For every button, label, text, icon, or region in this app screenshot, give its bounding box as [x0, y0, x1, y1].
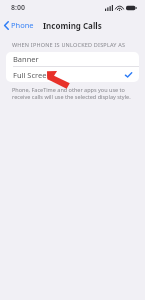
- button[interactable]: Phone: [0, 17, 40, 33]
- other: Selected: [125, 72, 132, 78]
- staticText: Banner: [13, 54, 39, 64]
- staticText: WHEN IPHONE IS UNLOCKED DISPLAY AS: [12, 41, 126, 48]
- button[interactable]: Banner: [6, 52, 139, 66]
- staticText: Phone: [11, 20, 34, 30]
- staticText: Incoming Calls: [43, 20, 102, 31]
- staticText: 8:00: [11, 3, 25, 13]
- staticText: Phone, FaceTime and other apps you use t…: [12, 86, 131, 100]
- button[interactable]: Full Screen: [6, 67, 139, 82]
- staticText: Full Screen: [13, 70, 52, 80]
